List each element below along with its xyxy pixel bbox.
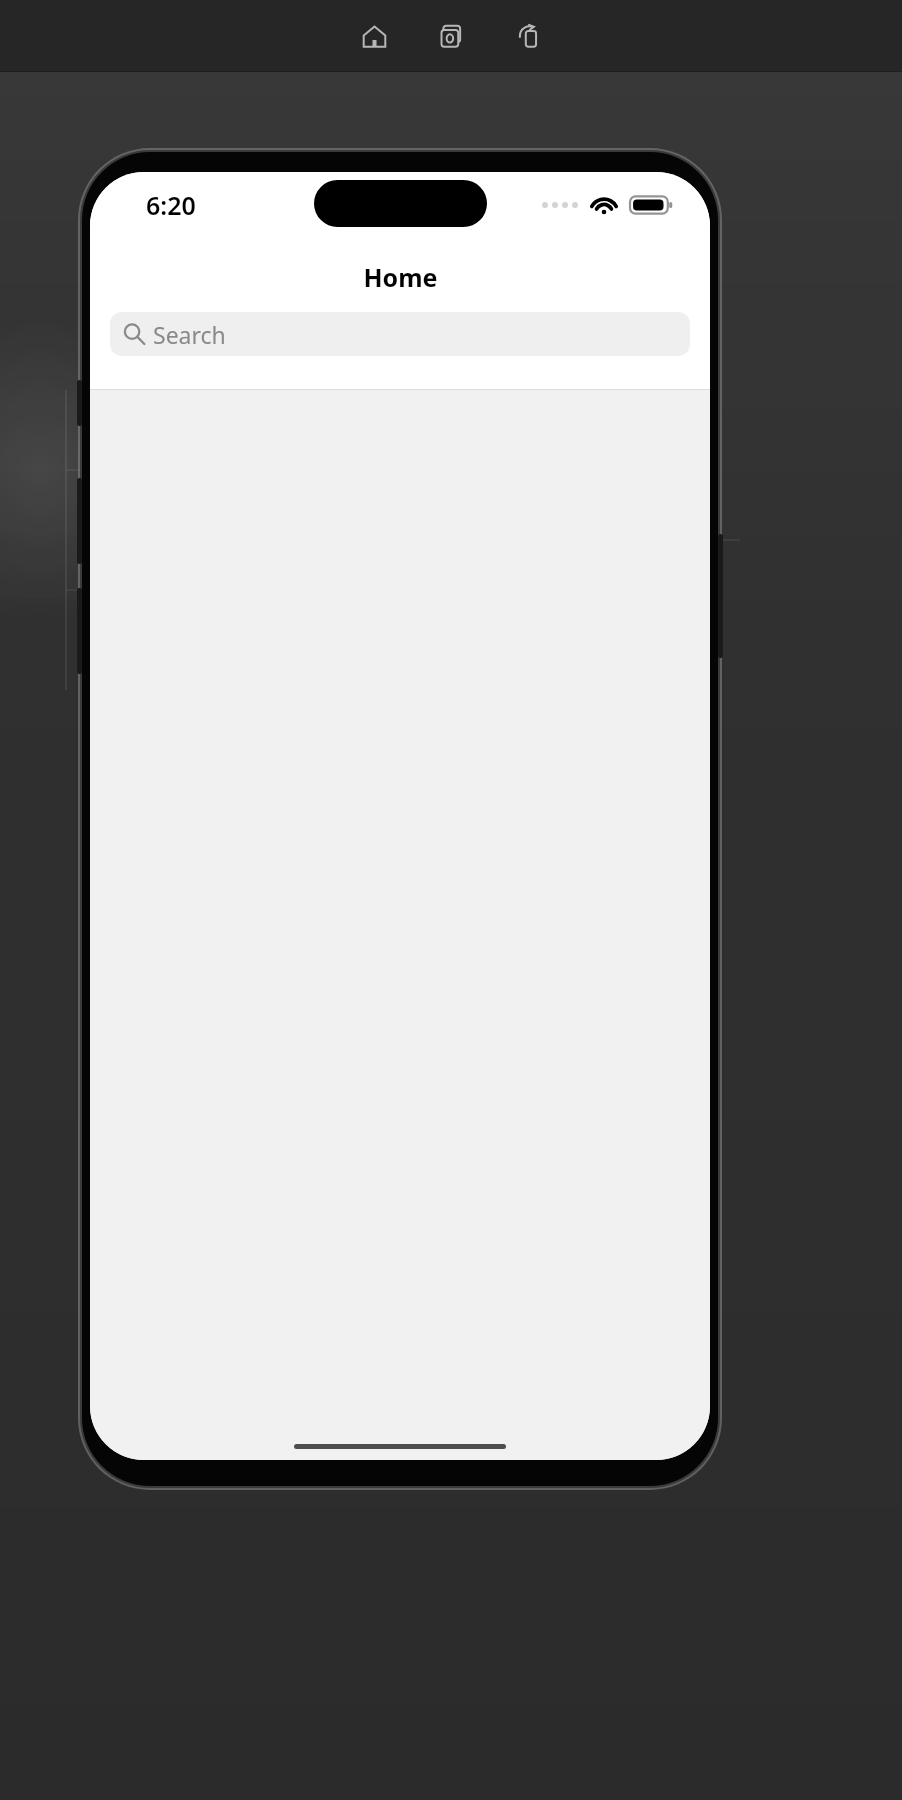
staticText: 6:20 — [146, 188, 196, 222]
staticText: Search — [153, 319, 226, 350]
staticText: Home — [363, 260, 438, 294]
button[interactable]: Rotate — [508, 16, 549, 57]
button[interactable]: Screenshot — [431, 16, 472, 57]
button[interactable]: Search — [110, 312, 690, 356]
button[interactable]: Home — [354, 16, 395, 57]
